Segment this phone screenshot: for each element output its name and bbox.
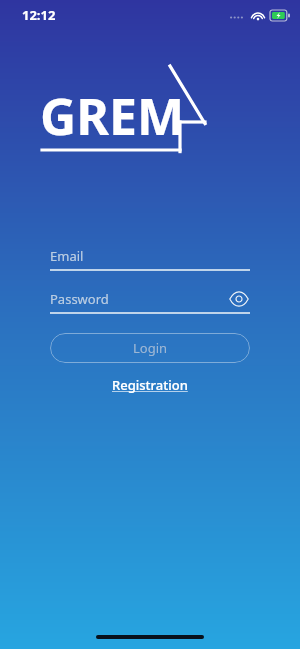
button[interactable]: Registration bbox=[108, 374, 192, 396]
staticText: Password bbox=[50, 290, 228, 308]
button[interactable]: Email bbox=[50, 243, 250, 271]
button[interactable]: Show password bbox=[228, 288, 250, 310]
staticText: GREM bbox=[40, 82, 185, 150]
staticText: 12:12 bbox=[22, 6, 56, 24]
staticText: Email bbox=[50, 247, 84, 265]
button[interactable]: Login bbox=[50, 333, 250, 363]
staticText: Login bbox=[133, 339, 168, 357]
button[interactable]: Password bbox=[50, 286, 250, 314]
staticText: Registration bbox=[112, 376, 188, 394]
